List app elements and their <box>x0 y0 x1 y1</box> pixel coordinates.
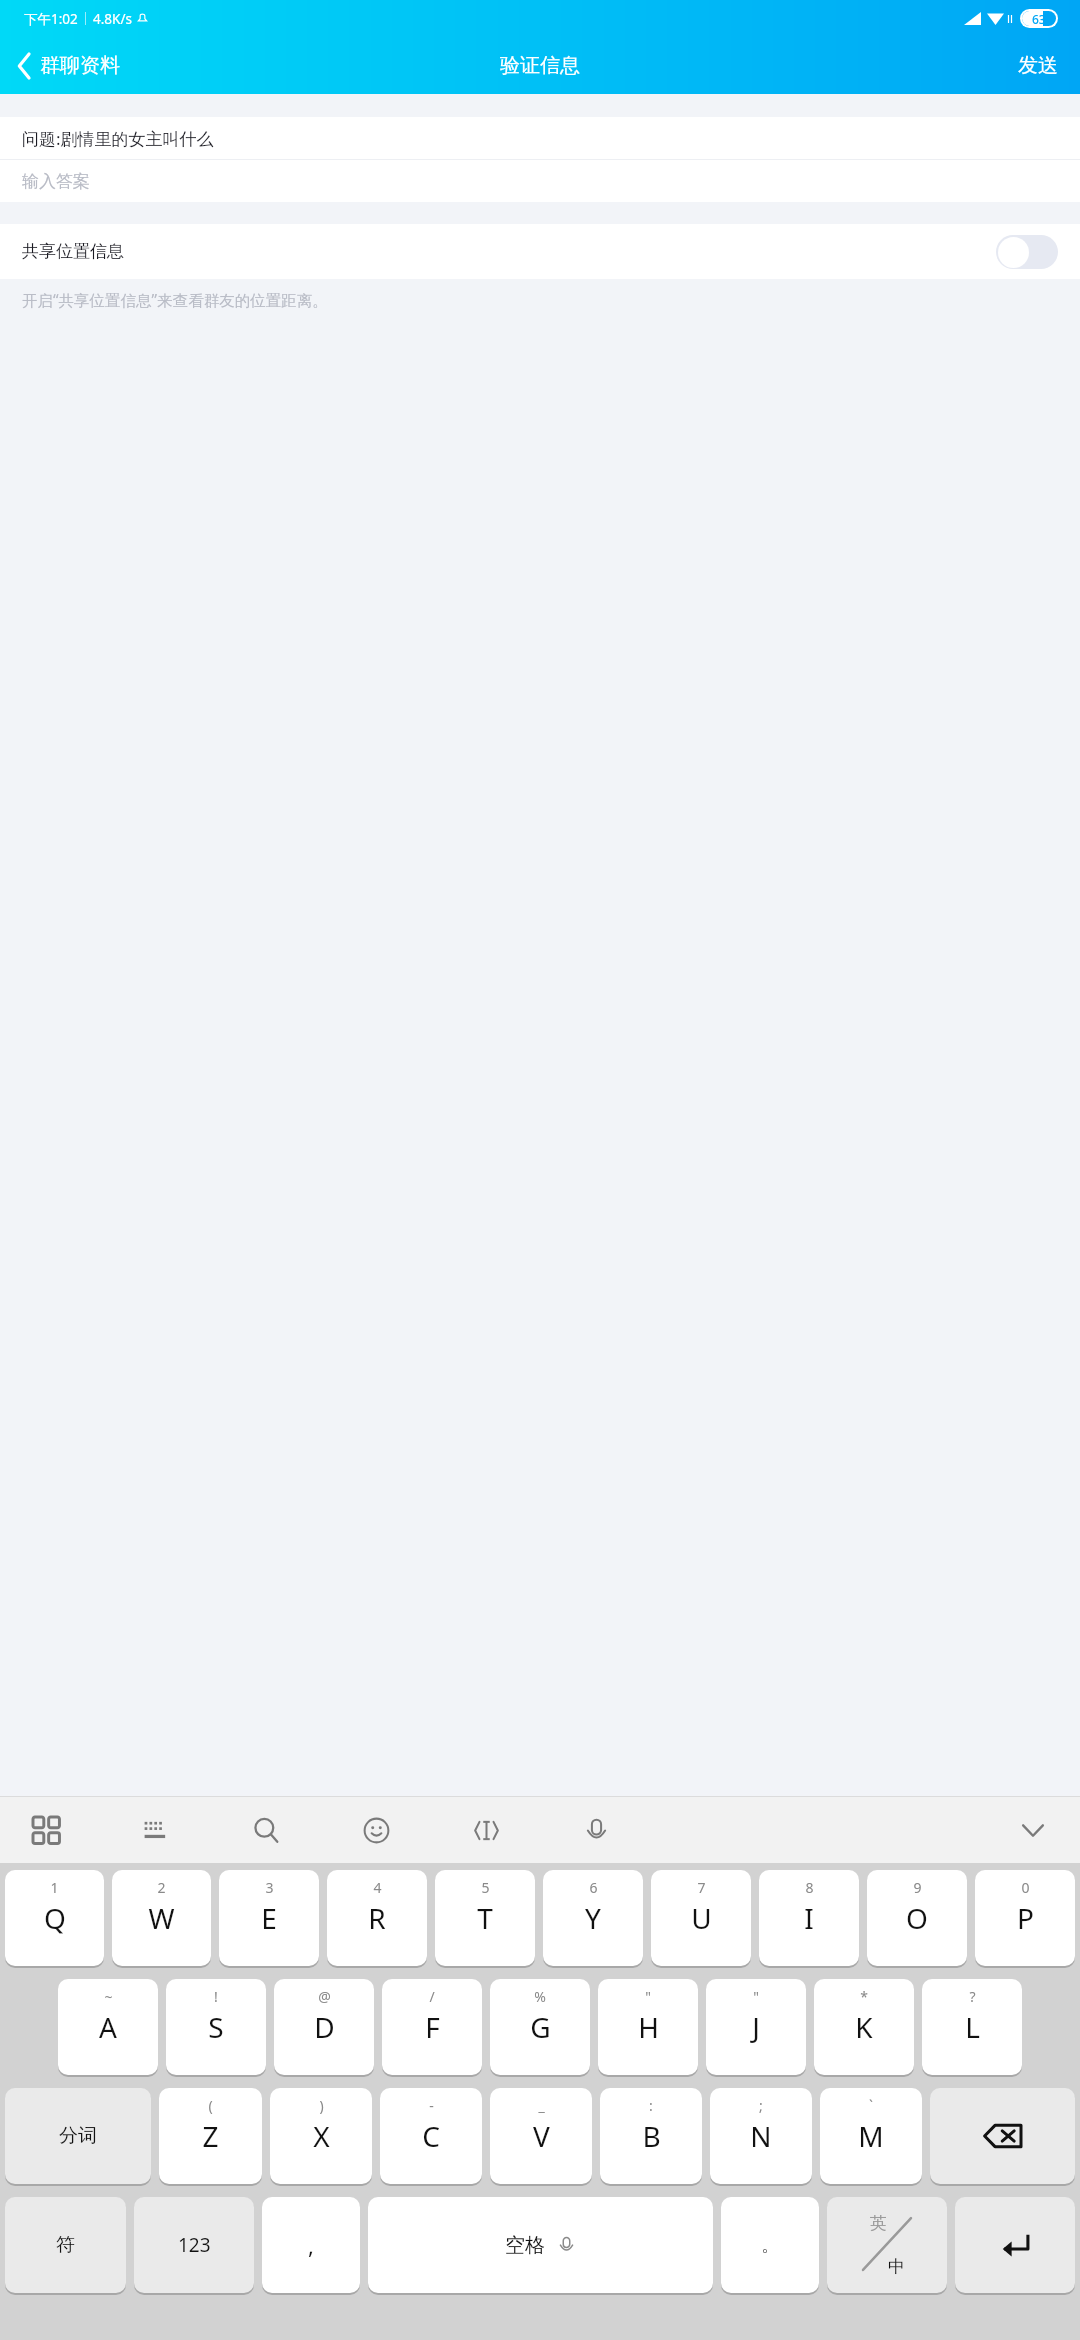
button[interactable]: Voice input <box>572 1806 620 1854</box>
staticText: 发送 <box>1018 53 1058 78</box>
button[interactable]: 1 <box>5 1870 104 1966</box>
button[interactable]: 群聊资料 <box>0 37 134 94</box>
button[interactable]: 4 <box>327 1870 427 1966</box>
button[interactable]: Text cursor <box>462 1806 510 1854</box>
staticText: 输入答案 <box>22 171 90 192</box>
button[interactable]: Apps <box>22 1806 70 1854</box>
button[interactable]: Hide keyboard <box>1004 1801 1062 1859</box>
staticText: 问题:剧情里的女主叫什么 <box>22 127 214 150</box>
button[interactable]: ~ <box>58 1979 158 2075</box>
button[interactable]: 符 <box>5 2197 126 2293</box>
button[interactable]: Keyboard <box>132 1806 180 1854</box>
staticText: U <box>691 1899 712 1937</box>
button[interactable]: @ <box>274 1979 374 2075</box>
button[interactable]: Search <box>242 1806 290 1854</box>
staticText: M <box>858 2117 884 2155</box>
button[interactable]: 空格 <box>368 2197 713 2293</box>
staticText: E <box>261 1899 277 1937</box>
staticText: 共享位置信息 <box>22 241 124 262</box>
button[interactable]: / <box>382 1979 482 2075</box>
button[interactable]: 9 <box>867 1870 967 1966</box>
staticText: 开启“共享位置信息”来查看群友的位置距离。 <box>22 289 328 310</box>
staticText: 下午1:02 <box>24 10 78 28</box>
staticText: 7 <box>697 1878 706 1897</box>
staticText: _ <box>538 2096 545 2115</box>
staticText: " <box>645 1987 651 2006</box>
button[interactable]: 6 <box>543 1870 643 1966</box>
button[interactable]: 0 <box>975 1870 1075 1966</box>
button[interactable]: - <box>380 2088 482 2184</box>
staticText: O <box>906 1899 928 1937</box>
button[interactable]: 8 <box>759 1870 859 1966</box>
staticText: S <box>208 2008 224 2046</box>
button[interactable]: " <box>598 1979 698 2075</box>
button[interactable]: ; <box>710 2088 812 2184</box>
staticText: 63 <box>1032 11 1046 26</box>
button[interactable]: ( <box>159 2088 262 2184</box>
staticText: 群聊资料 <box>40 53 120 78</box>
button[interactable]: _ <box>490 2088 592 2184</box>
staticText: V <box>533 2117 550 2155</box>
button[interactable]: 共享位置信息 <box>0 224 1080 279</box>
staticText: 分词 <box>59 2124 97 2148</box>
button[interactable]: 3 <box>219 1870 319 1966</box>
button[interactable]: ` <box>820 2088 922 2184</box>
button[interactable]: 发送 <box>998 37 1080 94</box>
button[interactable]: % <box>490 1979 590 2075</box>
staticText: 5 <box>481 1878 490 1897</box>
staticText: @ <box>318 1987 331 2006</box>
staticText: Y <box>585 1899 601 1937</box>
staticText: : <box>649 2096 653 2115</box>
button[interactable]: Enter <box>955 2197 1075 2293</box>
button[interactable]: 中英文切换 <box>827 2197 947 2293</box>
button[interactable]: 问题:剧情里的女主叫什么 <box>0 117 1080 159</box>
staticText: ; <box>759 2096 763 2115</box>
staticText: P <box>1017 1899 1034 1937</box>
staticText: X <box>313 2117 330 2155</box>
button[interactable]: 7 <box>651 1870 751 1966</box>
button[interactable]: * <box>814 1979 914 2075</box>
staticText: ! <box>214 1987 218 2006</box>
staticText: F <box>425 2008 440 2046</box>
button[interactable]: 分词 <box>5 2088 151 2184</box>
button[interactable]: 2 <box>112 1870 211 1966</box>
staticText: 英 <box>870 2213 887 2234</box>
staticText: 4 <box>373 1878 382 1897</box>
staticText: 。 <box>761 2234 779 2257</box>
button[interactable]: Emoji <box>352 1806 400 1854</box>
button[interactable]: Backspace <box>930 2088 1075 2184</box>
staticText: 123 <box>178 2232 211 2258</box>
staticText: , <box>308 2230 314 2260</box>
button[interactable]: ! <box>166 1979 266 2075</box>
button[interactable]: 输入答案 <box>0 160 1080 202</box>
button[interactable]: " <box>706 1979 806 2075</box>
staticText: 符 <box>56 2233 75 2257</box>
button[interactable]: : <box>600 2088 702 2184</box>
button[interactable]: ) <box>270 2088 372 2184</box>
staticText: T <box>477 1899 493 1937</box>
staticText: J <box>752 2008 760 2046</box>
button[interactable]: 。 <box>721 2197 819 2293</box>
staticText: 空格 <box>505 2233 545 2258</box>
staticText: Q <box>44 1899 66 1937</box>
staticText: I <box>804 1899 814 1937</box>
button[interactable]: 123 <box>134 2197 254 2293</box>
staticText: 4.8K/s <box>93 10 132 28</box>
button[interactable]: , <box>262 2197 360 2293</box>
staticText: 中 <box>888 2256 905 2277</box>
staticText: W <box>148 1899 175 1937</box>
staticText: ~ <box>104 1987 113 2006</box>
staticText: A <box>99 2008 117 2046</box>
staticText: * <box>860 1987 868 2006</box>
staticText: ( <box>208 2096 213 2115</box>
button[interactable]: 共享位置信息开关 <box>996 235 1058 269</box>
staticText: G <box>530 2008 551 2046</box>
staticText: ` <box>869 2096 873 2115</box>
button[interactable]: 5 <box>435 1870 535 1966</box>
staticText: ) <box>319 2096 324 2115</box>
staticText: 9 <box>913 1878 922 1897</box>
button[interactable]: ? <box>922 1979 1022 2075</box>
staticText: L <box>965 2008 980 2046</box>
staticText: D <box>314 2008 335 2046</box>
staticText: H <box>638 2008 659 2046</box>
